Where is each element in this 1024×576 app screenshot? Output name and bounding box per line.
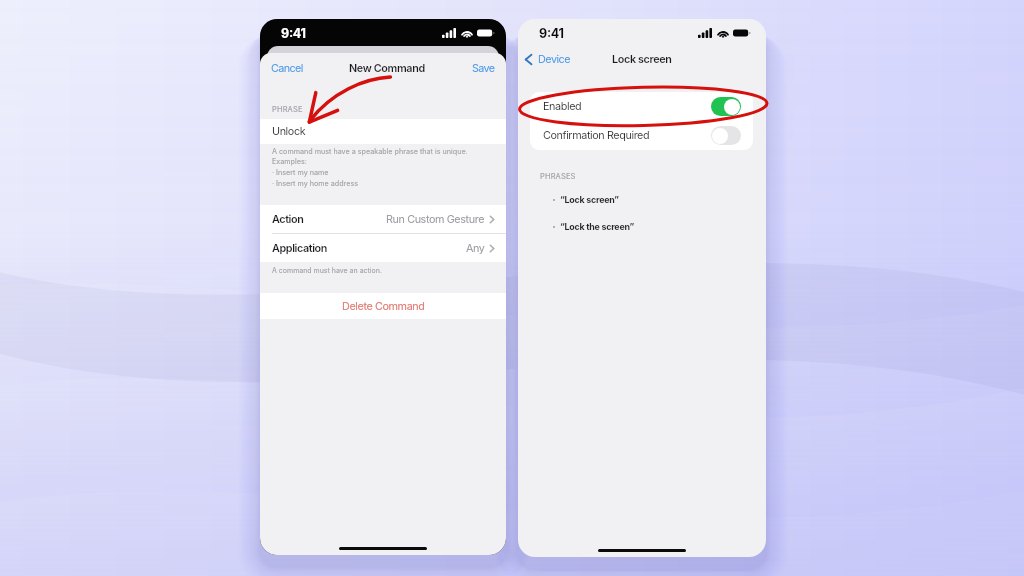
staticText: 9:41 — [539, 26, 564, 41]
staticText: 9:41 — [281, 26, 306, 41]
staticText: Cancel — [271, 62, 303, 75]
staticText: New Command — [349, 62, 425, 75]
staticText: “Lock screen” — [560, 194, 619, 205]
button[interactable]: Cancel — [271, 62, 303, 75]
staticText: Confirmation Required — [543, 129, 650, 142]
staticText: Application — [272, 242, 327, 255]
staticText: “Lock the screen” — [560, 221, 634, 232]
button[interactable]: Action — [260, 205, 506, 233]
staticText: Run Custom Gesture — [386, 213, 485, 226]
staticText: PHRASE — [272, 105, 303, 114]
staticText: Action — [272, 213, 304, 226]
staticText: Enabled — [543, 100, 582, 113]
staticText: Delete Command — [342, 300, 425, 313]
button[interactable]: Device — [522, 48, 575, 70]
staticText: A command must have an action. — [272, 266, 382, 274]
staticText: Lock screen — [612, 53, 672, 66]
staticText: Any — [466, 242, 485, 255]
staticText: A command must have a speakable phrase t… — [272, 147, 468, 188]
button[interactable]: Confirmation Required — [530, 121, 753, 150]
button[interactable]: Enabled — [530, 92, 753, 121]
staticText: Save — [472, 62, 495, 75]
staticText: Unlock — [272, 125, 306, 138]
button[interactable]: Application — [260, 234, 506, 262]
staticText: Device — [538, 53, 571, 66]
button[interactable]: Unlock — [260, 119, 506, 144]
button[interactable]: Enabled on — [711, 97, 741, 116]
button[interactable]: Confirmation Required off — [711, 126, 741, 145]
staticText: PHRASES — [540, 172, 576, 181]
button[interactable]: Save — [472, 62, 495, 75]
button[interactable]: Delete Command — [260, 293, 506, 319]
